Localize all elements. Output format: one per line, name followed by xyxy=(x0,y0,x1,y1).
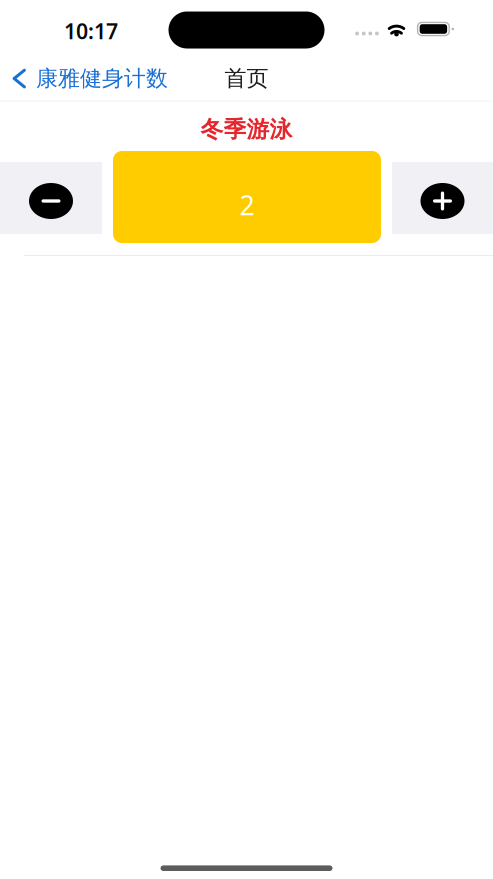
staticText: 2 xyxy=(239,187,254,223)
staticText: 冬季游泳 xyxy=(200,115,292,144)
staticText: 康雅健身计数 xyxy=(36,65,168,92)
staticText: 首页 xyxy=(224,65,268,92)
staticText: 10:17 xyxy=(64,16,118,46)
button[interactable]: 康雅健身计数 xyxy=(0,60,176,97)
button[interactable]: Decrease count xyxy=(0,161,102,233)
button[interactable]: Increase count xyxy=(392,161,493,233)
